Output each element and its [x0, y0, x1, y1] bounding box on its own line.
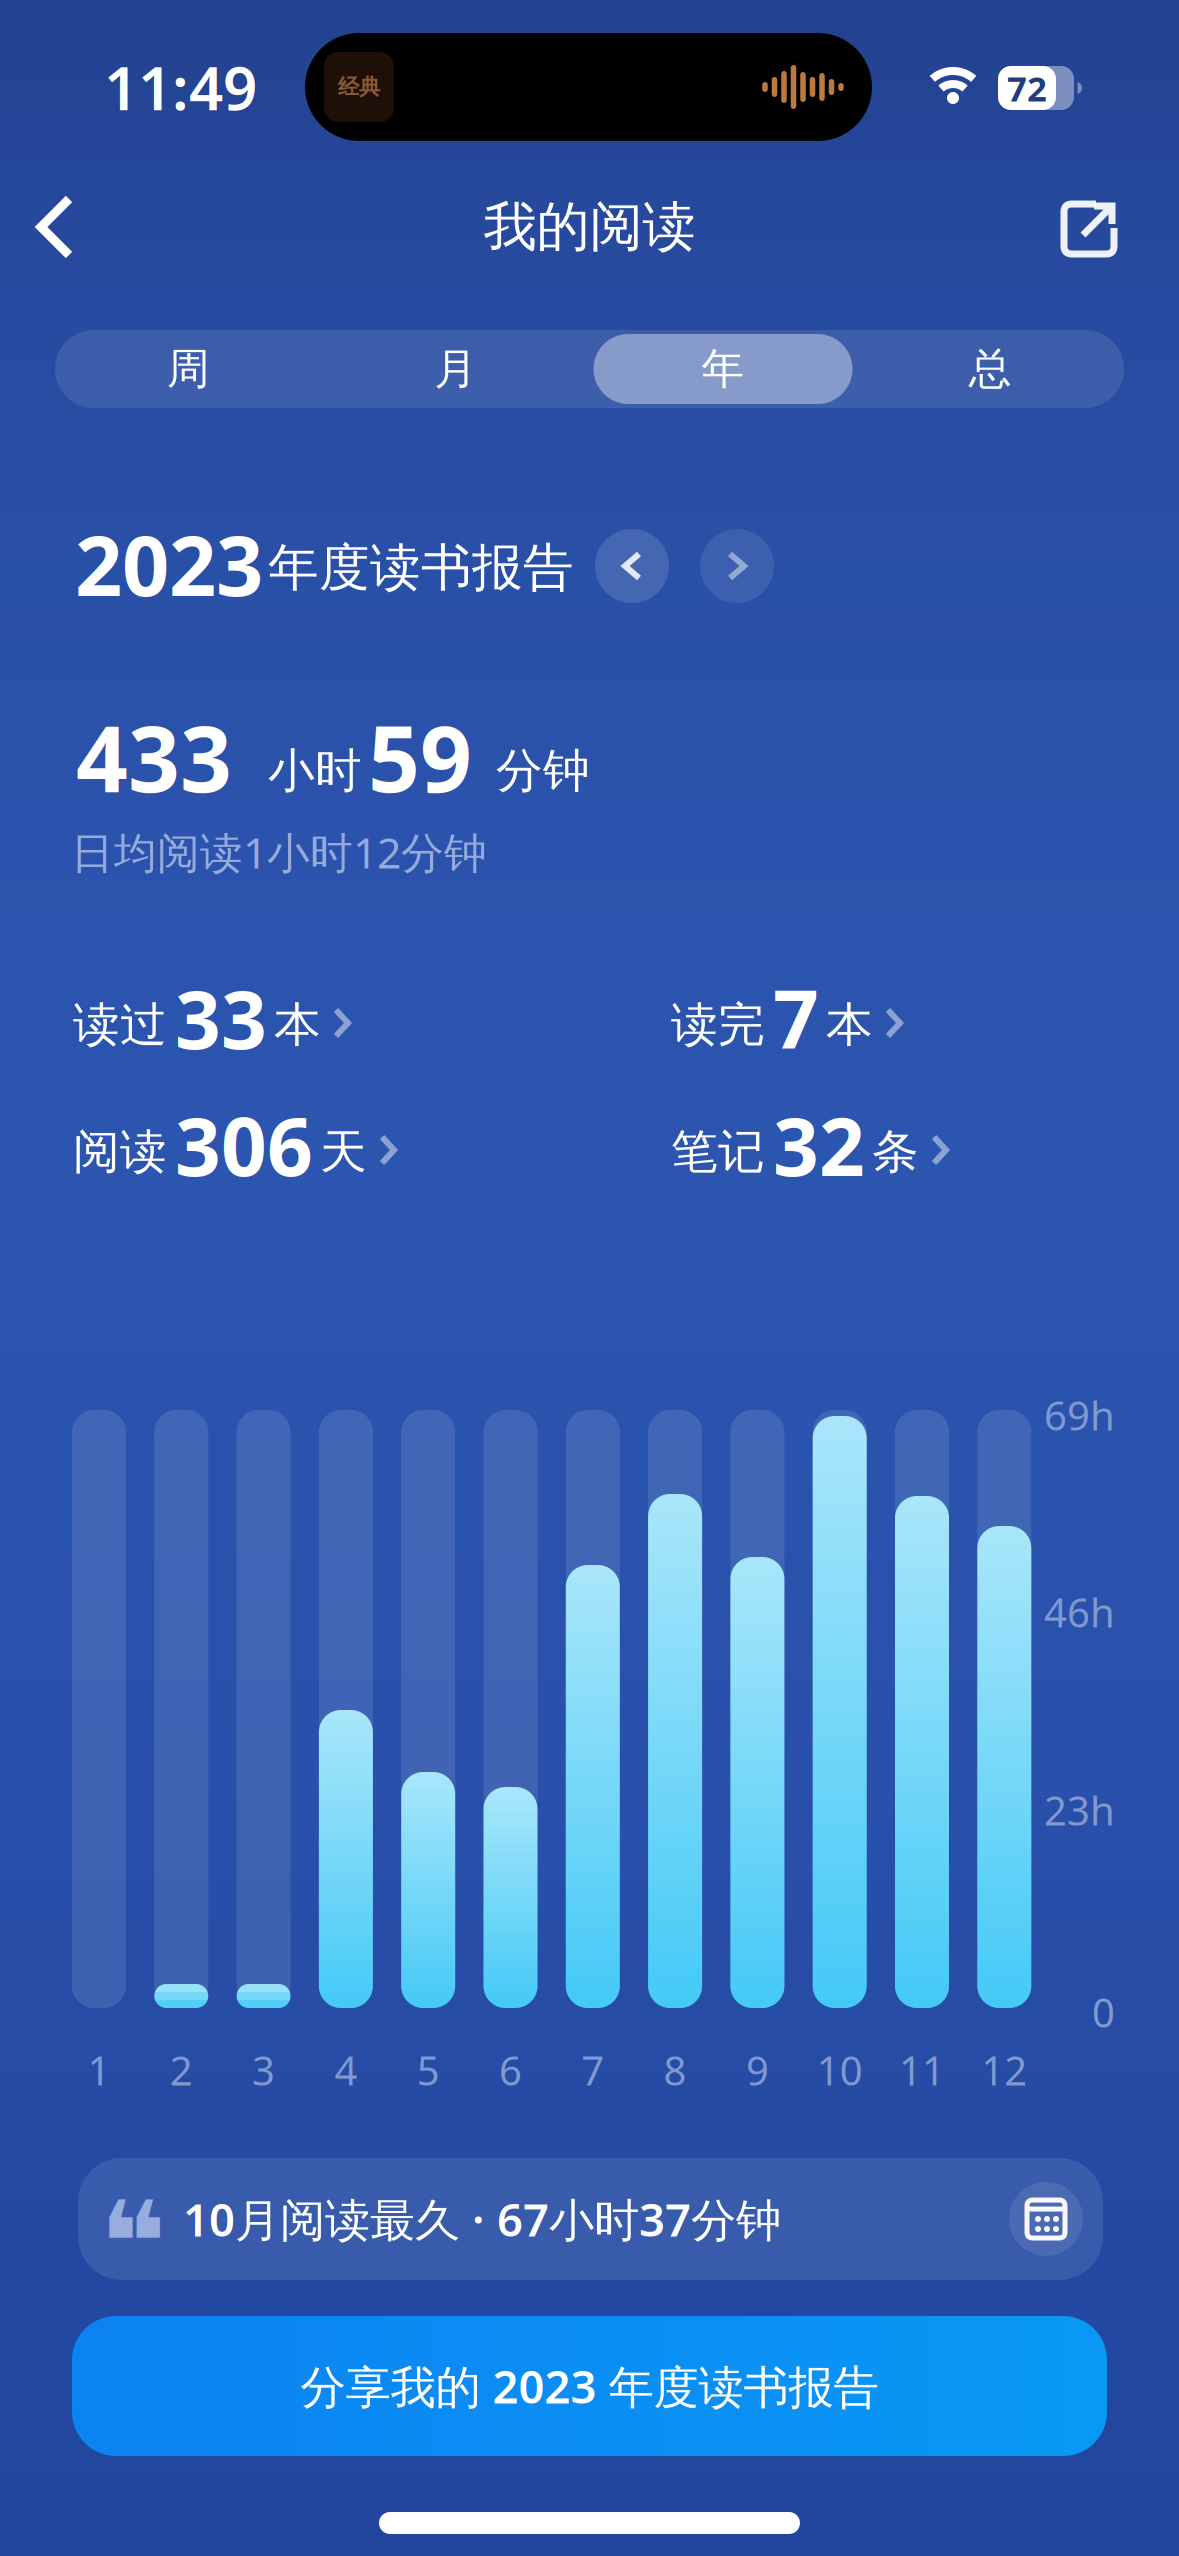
- staticText: 周: [167, 343, 210, 395]
- staticText: ❝: [99, 2178, 166, 2308]
- staticText: 小时: [268, 742, 362, 800]
- staticText: 我的阅读: [483, 194, 695, 260]
- staticText: 306: [175, 1092, 313, 1198]
- staticText: 本: [274, 996, 321, 1054]
- staticText: 月: [434, 343, 477, 395]
- button[interactable]: 月: [322, 330, 589, 408]
- staticText: 59: [368, 697, 472, 817]
- staticText: 3: [252, 2043, 275, 2096]
- staticText: 12: [981, 2043, 1027, 2096]
- staticText: 笔记: [671, 1123, 765, 1181]
- staticText: 4: [334, 2043, 357, 2096]
- staticText: 69h: [1044, 1388, 1115, 1441]
- staticText: 阅读: [73, 1123, 167, 1181]
- staticText: 总: [969, 343, 1012, 395]
- staticText: 分享我的 2023 年度读书报告: [300, 2356, 878, 2416]
- button[interactable]: 分享: [1044, 184, 1134, 274]
- staticText: 9: [746, 2043, 769, 2096]
- button[interactable]: 分享我的 2023 年度读书报告: [72, 2316, 1107, 2456]
- staticText: 7: [773, 965, 819, 1071]
- staticText: 10: [817, 2043, 863, 2096]
- staticText: 读完: [671, 996, 765, 1054]
- staticText: 分钟: [496, 742, 590, 800]
- staticText: 46h: [1044, 1585, 1115, 1638]
- staticText: 11: [899, 2043, 945, 2096]
- staticText: 6: [499, 2043, 522, 2096]
- staticText: 2: [170, 2043, 193, 2096]
- staticText: 33: [175, 965, 267, 1071]
- staticText: 23h: [1044, 1783, 1115, 1836]
- button[interactable]: 读完: [671, 968, 903, 1068]
- staticText: 11:49: [104, 47, 257, 127]
- staticText: 0: [1092, 1985, 1115, 2038]
- staticText: 日均阅读1小时12分钟: [71, 824, 487, 880]
- staticText: 2023: [75, 509, 263, 619]
- staticText: 433: [76, 697, 232, 817]
- button[interactable]: 笔记: [671, 1095, 949, 1195]
- button[interactable]: 年: [589, 330, 856, 408]
- staticText: 本: [826, 996, 873, 1054]
- staticText: 5: [417, 2043, 440, 2096]
- staticText: 年: [701, 343, 744, 395]
- staticText: 32: [773, 1092, 865, 1198]
- staticText: 7: [581, 2043, 604, 2096]
- staticText: 读过: [73, 996, 167, 1054]
- staticText: 10月阅读最久 · 67小时37分钟: [183, 2189, 781, 2249]
- button[interactable]: 日历: [1009, 2182, 1083, 2256]
- button[interactable]: 阅读: [73, 1095, 397, 1195]
- staticText: 条: [872, 1123, 919, 1181]
- staticText: 1: [87, 2043, 110, 2096]
- staticText: 经典: [338, 74, 380, 100]
- button[interactable]: 上一年: [595, 529, 669, 603]
- staticText: 年度读书报告: [268, 537, 574, 599]
- staticText: 72: [1007, 65, 1047, 111]
- button[interactable]: 总: [857, 330, 1124, 408]
- button[interactable]: 读过: [73, 968, 351, 1068]
- staticText: 8: [664, 2043, 687, 2096]
- button[interactable]: 下一年: [700, 529, 774, 603]
- button[interactable]: 返回: [10, 182, 100, 272]
- button[interactable]: 周: [55, 330, 322, 408]
- staticText: 天: [320, 1123, 367, 1181]
